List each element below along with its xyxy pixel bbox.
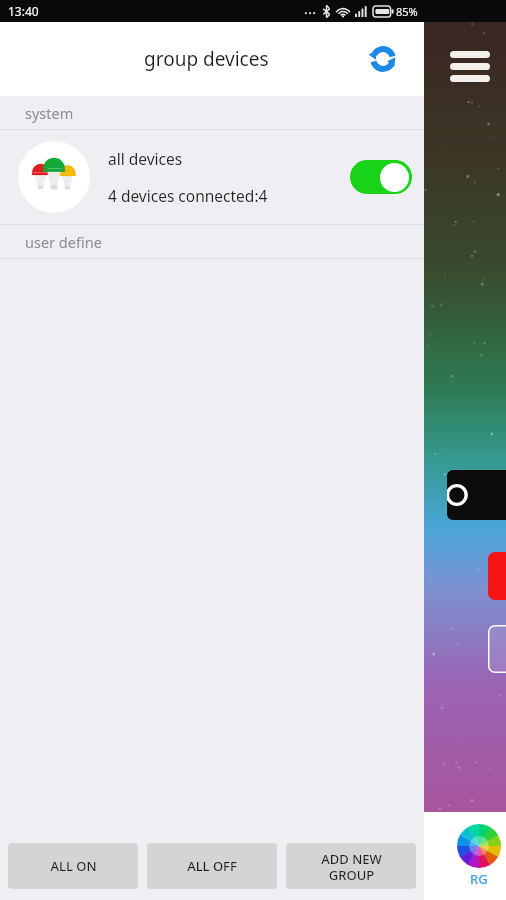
- staticText: 13:40: [8, 3, 39, 19]
- button[interactable]: [447, 470, 506, 520]
- button[interactable]: ADD NEW GROUP: [286, 843, 416, 889]
- button[interactable]: Menu: [446, 47, 494, 86]
- staticText: ALL OFF: [187, 857, 237, 875]
- button[interactable]: Toggle all devices: [350, 160, 412, 194]
- button[interactable]: Refresh: [360, 36, 406, 82]
- staticText: group devices: [144, 46, 269, 72]
- staticText: ADD NEW GROUP: [321, 850, 382, 883]
- button[interactable]: [488, 552, 506, 600]
- staticText: ALL ON: [50, 857, 97, 875]
- staticText: RG: [470, 870, 488, 888]
- staticText: system: [25, 103, 74, 123]
- staticText: 85%: [396, 4, 418, 19]
- staticText: user define: [25, 232, 102, 252]
- button[interactable]: all devices: [0, 130, 424, 224]
- button[interactable]: ALL OFF: [147, 843, 277, 889]
- staticText: 4 devices connected:4: [108, 185, 268, 206]
- button[interactable]: [488, 625, 506, 673]
- staticText: all devices: [108, 148, 183, 169]
- button[interactable]: ALL ON: [8, 843, 138, 889]
